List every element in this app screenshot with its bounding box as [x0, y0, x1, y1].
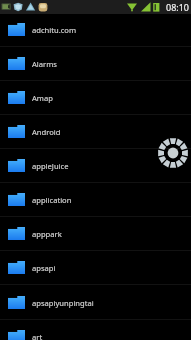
staticText: Amap: [32, 93, 53, 103]
staticText: adchitu.com: [32, 25, 77, 35]
staticText: art: [32, 332, 43, 340]
button[interactable]: adchitu.com: [0, 13, 191, 47]
staticText: Android: [32, 127, 61, 137]
button[interactable]: Quick scroll dial: [158, 138, 188, 168]
button[interactable]: art: [0, 320, 191, 340]
staticText: 08:10: [166, 1, 190, 13]
button[interactable]: appleJuice: [0, 149, 191, 183]
button[interactable]: apsapi: [0, 251, 191, 285]
staticText: apppark: [32, 229, 62, 239]
staticText: Alarms: [32, 59, 57, 69]
staticText: appleJuice: [32, 161, 69, 171]
button[interactable]: application: [0, 183, 191, 217]
button[interactable]: Android: [0, 115, 191, 149]
button[interactable]: Alarms: [0, 47, 191, 81]
staticText: application: [32, 195, 72, 205]
button[interactable]: apsapiyunpingtai: [0, 286, 191, 320]
button[interactable]: apppark: [0, 217, 191, 251]
staticText: apsapi: [32, 263, 56, 273]
staticText: apsapiyunpingtai: [32, 298, 94, 308]
button[interactable]: Amap: [0, 81, 191, 115]
